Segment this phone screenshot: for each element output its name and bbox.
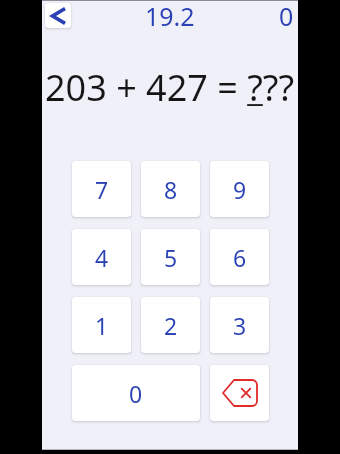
button[interactable]: 0 (72, 365, 200, 421)
button[interactable]: 4 (72, 229, 131, 285)
staticText: 8 (164, 174, 178, 205)
staticText: 0 (129, 378, 143, 409)
button[interactable]: 7 (72, 161, 131, 217)
button[interactable]: 9 (210, 161, 269, 217)
button[interactable]: 5 (141, 229, 200, 285)
staticText: 0 (279, 0, 294, 32)
staticText: 19.2 (145, 0, 195, 32)
staticText: 2 (164, 310, 178, 341)
staticText: 9 (233, 174, 247, 205)
staticText: 7 (95, 174, 109, 205)
button[interactable]: 8 (141, 161, 200, 217)
staticText: 3 (233, 310, 247, 341)
button[interactable]: 3 (210, 297, 269, 353)
button[interactable] (45, 3, 71, 28)
button[interactable]: 1 (72, 297, 131, 353)
button[interactable]: 2 (141, 297, 200, 353)
staticText: 1 (95, 310, 109, 341)
staticText: 5 (164, 242, 178, 273)
staticText: 4 (95, 242, 109, 273)
staticText: 203 + 427 = ??? (45, 63, 295, 112)
button[interactable] (210, 365, 269, 421)
button[interactable]: 6 (210, 229, 269, 285)
staticText: 6 (233, 242, 247, 273)
